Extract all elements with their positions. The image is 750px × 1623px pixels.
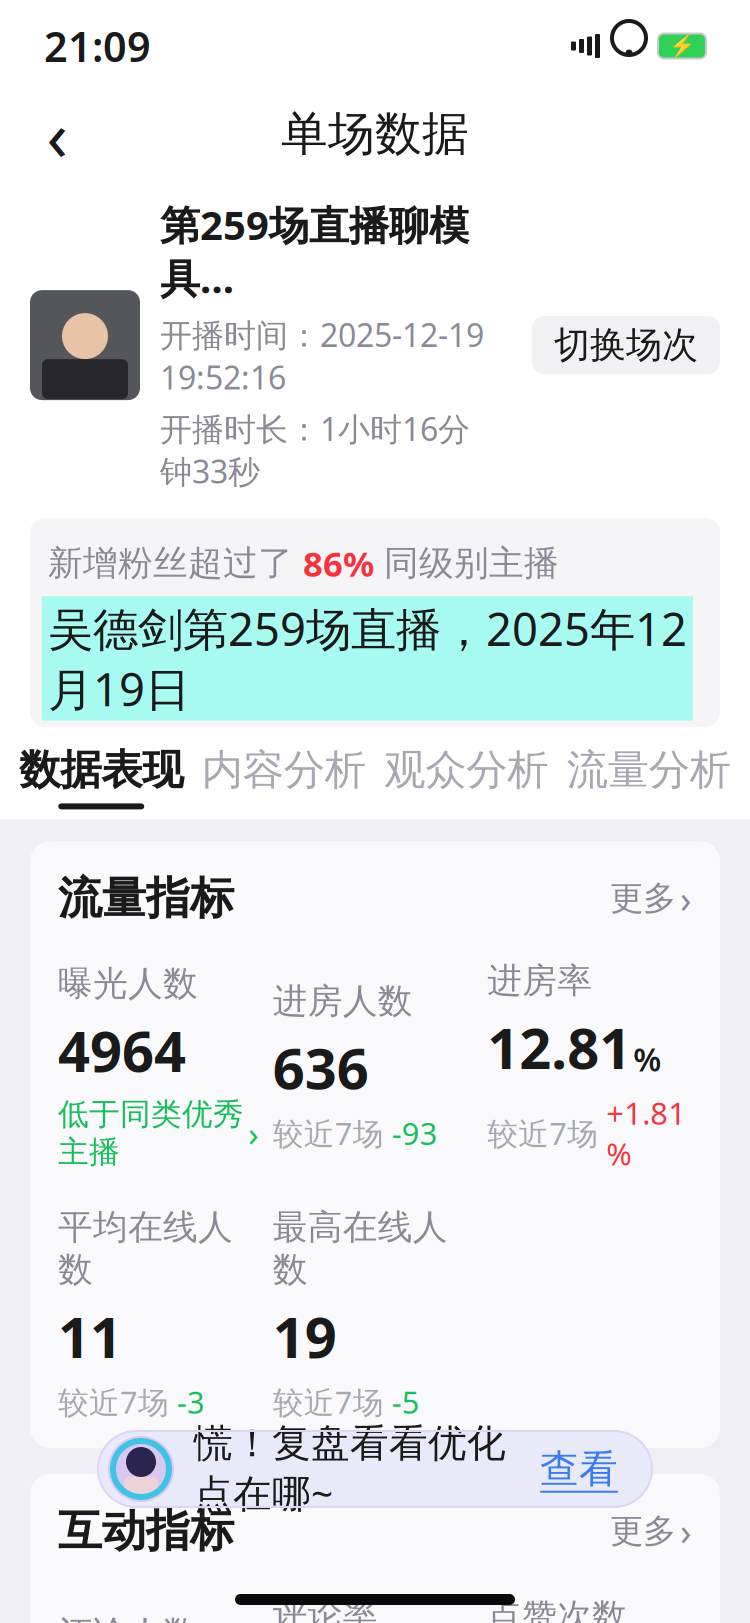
staticText: ‹: [46, 88, 67, 180]
staticText: ›: [248, 1110, 259, 1156]
staticText: 流量分析: [567, 745, 731, 795]
staticText: 636: [273, 1030, 369, 1105]
staticText: 19: [273, 1299, 337, 1373]
staticText: ›: [680, 874, 692, 923]
staticText: 较近7场: [273, 1113, 384, 1153]
button[interactable]: 流量分析: [557, 745, 740, 809]
staticText: 慌！复盘看看优化点在哪~: [194, 1420, 506, 1518]
staticText: -5: [392, 1381, 420, 1422]
staticText: 进房人数: [273, 980, 413, 1022]
staticText: 较近7场: [58, 1381, 169, 1422]
staticText: %: [633, 1038, 661, 1080]
staticText: 较近7场: [273, 1381, 384, 1422]
staticText: 切换场次: [554, 323, 698, 367]
staticText: 同级别主播: [374, 542, 559, 584]
button[interactable]: 慌！复盘看看优化点在哪~: [98, 1431, 652, 1507]
button[interactable]: 更多: [610, 1506, 692, 1556]
staticText: 4964: [58, 1013, 186, 1087]
staticText: 21:09: [44, 19, 151, 73]
staticText: 互动指标: [58, 1504, 234, 1558]
staticText: 86%: [303, 540, 374, 586]
staticText: 单场数据: [281, 105, 469, 163]
staticText: 吴德剑第259场直播，2025年12月19日: [48, 598, 687, 719]
staticText: -93: [392, 1113, 438, 1153]
staticText: 数据表现: [19, 745, 183, 795]
staticText: 开播时间：2025-12-19 19:52:16: [160, 313, 484, 398]
staticText: +1.81%: [606, 1092, 686, 1174]
staticText: 查看: [540, 1445, 618, 1493]
staticText: 更多: [610, 878, 676, 919]
staticText: 低于同类优秀主播: [58, 1095, 244, 1171]
button[interactable]: 内容分析: [192, 745, 375, 809]
staticText: 内容分析: [202, 745, 366, 795]
staticText: 流量指标: [58, 871, 234, 925]
button[interactable]: 观众分析: [375, 745, 557, 809]
button[interactable]: 切换场次: [532, 316, 720, 374]
staticText: 评论人数: [58, 1612, 198, 1623]
staticText: 最高在线人数: [273, 1206, 448, 1291]
staticText: ⚡: [668, 34, 695, 58]
staticText: 11: [58, 1299, 122, 1373]
staticText: 第259场直播聊模具…: [160, 198, 469, 304]
button[interactable]: 数据表现: [10, 745, 192, 809]
staticText: 观众分析: [384, 745, 548, 795]
staticText: 平均在线人数: [58, 1206, 233, 1291]
staticText: 点赞次数: [487, 1595, 627, 1623]
staticText: ›: [680, 1506, 692, 1556]
staticText: 新增粉丝超过了: [48, 542, 303, 584]
staticText: 更多: [610, 1511, 676, 1552]
button[interactable]: 低于同类优秀主播: [58, 1095, 259, 1171]
staticText: -3: [177, 1381, 205, 1422]
button[interactable]: 返回: [22, 99, 92, 169]
staticText: 开播时长：1小时16分钟33秒: [160, 407, 470, 492]
staticText: 评论率: [273, 1592, 378, 1623]
staticText: 12.81: [487, 1010, 631, 1084]
staticText: 曝光人数: [58, 962, 198, 1005]
button[interactable]: 更多: [610, 874, 692, 923]
staticText: 较近7场: [487, 1113, 598, 1153]
staticText: 进房率: [487, 959, 592, 1002]
